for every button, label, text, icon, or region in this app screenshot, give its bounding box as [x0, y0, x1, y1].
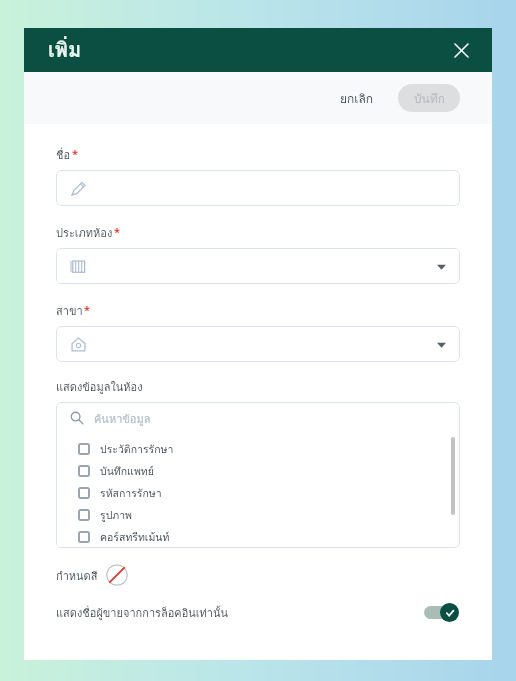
- staticText: ประวัติการรักษา: [100, 441, 174, 458]
- button[interactable]: รหัสการรักษา: [56, 482, 460, 504]
- staticText: บันทึก: [414, 89, 445, 108]
- staticText: *: [72, 146, 78, 161]
- staticText: ค้นหาข้อมูล: [94, 410, 151, 427]
- staticText: ชื่อ: [56, 146, 71, 163]
- button[interactable]: ประวัติการรักษา: [56, 438, 460, 460]
- button[interactable]: บันทึกแพทย์: [56, 460, 460, 482]
- button[interactable]: [56, 326, 460, 362]
- staticText: สาขา: [56, 302, 83, 319]
- staticText: ยกเลิก: [340, 89, 374, 108]
- button[interactable]: [56, 248, 460, 284]
- button[interactable]: ยกเลิก: [330, 83, 384, 114]
- staticText: รูปภาพ: [100, 507, 133, 524]
- staticText: แสดงชื่อผู้ขายจากการล็อคอินเท่านั้น: [56, 604, 229, 621]
- staticText: บันทึกแพทย์: [100, 463, 154, 480]
- button[interactable]: คอร์สทรีทเม้นท์: [56, 526, 460, 548]
- button[interactable]: Close: [448, 37, 474, 63]
- staticText: *: [114, 224, 120, 239]
- staticText: กำหนดสี: [56, 567, 98, 584]
- staticText: รหัสการรักษา: [100, 485, 162, 502]
- staticText: คอร์สทรีทเม้นท์: [100, 529, 170, 546]
- staticText: ประเภทห้อง: [56, 224, 113, 241]
- button[interactable]: Toggle seller name: [422, 602, 460, 622]
- staticText: เพิ่ม: [48, 34, 82, 66]
- button[interactable]: ค้นหาข้อมูล: [56, 402, 460, 434]
- button[interactable]: บันทึก: [398, 84, 460, 112]
- button[interactable]: Choose colour: [106, 564, 128, 586]
- staticText: *: [84, 302, 90, 317]
- staticText: แสดงข้อมูลในห้อง: [56, 378, 143, 395]
- button[interactable]: [56, 170, 460, 206]
- button[interactable]: รูปภาพ: [56, 504, 460, 526]
